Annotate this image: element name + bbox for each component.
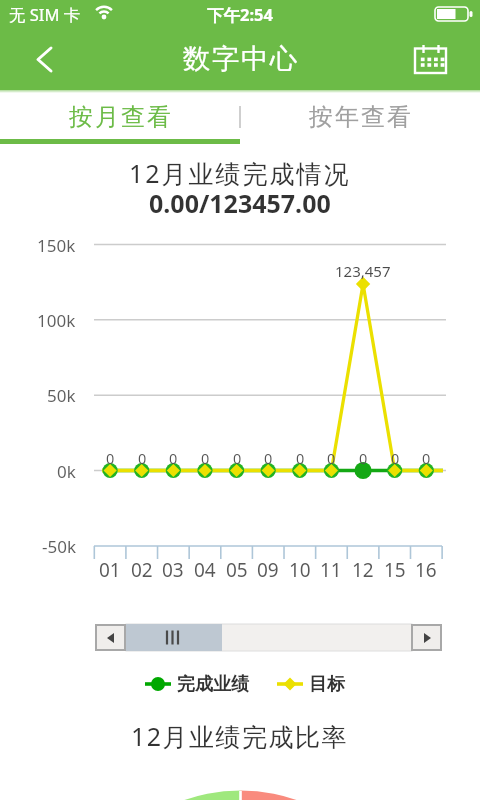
- staticText: 15: [384, 557, 406, 583]
- button[interactable]: 按年查看: [240, 90, 480, 144]
- staticText: 04: [194, 557, 216, 583]
- button[interactable]: [20, 35, 70, 83]
- staticText: 09: [257, 557, 279, 583]
- staticText: 11: [320, 557, 342, 583]
- staticText: -50k: [42, 535, 76, 558]
- staticText: 10: [289, 557, 311, 583]
- button[interactable]: [140, 670, 255, 698]
- staticText: 按月查看: [68, 102, 172, 132]
- staticText: 150k: [37, 234, 76, 257]
- staticText: 无 SIM 卡: [9, 3, 81, 26]
- staticText: 12月业绩完成情况: [129, 156, 351, 190]
- button[interactable]: [405, 38, 460, 82]
- staticText: 100k: [37, 309, 76, 332]
- staticText: 02: [131, 557, 153, 583]
- staticText: 03: [162, 557, 184, 583]
- staticText: 0: [391, 448, 400, 468]
- staticText: 16: [415, 557, 437, 583]
- staticText: 0: [296, 448, 305, 468]
- button[interactable]: 按月查看: [0, 90, 240, 144]
- staticText: 0: [327, 448, 336, 468]
- staticText: 50k: [47, 384, 76, 407]
- button[interactable]: [95, 624, 126, 651]
- staticText: 12月业绩完成比率: [131, 719, 349, 753]
- button[interactable]: [272, 670, 352, 698]
- staticText: 0k: [57, 460, 76, 483]
- staticText: 05: [226, 557, 248, 583]
- staticText: 0: [233, 448, 242, 468]
- staticText: 123,457: [335, 261, 391, 281]
- staticText: 0.00/123457.00: [149, 186, 331, 220]
- staticText: 12: [352, 557, 374, 583]
- staticText: 01: [99, 557, 121, 583]
- staticText: 目标: [309, 673, 345, 696]
- staticText: 下午2:54: [207, 3, 273, 26]
- staticText: 0: [359, 448, 368, 468]
- staticText: 按年查看: [308, 102, 412, 132]
- staticText: 0: [422, 448, 431, 468]
- staticText: 0: [106, 448, 115, 468]
- button[interactable]: [411, 624, 442, 651]
- staticText: 完成业绩: [177, 673, 249, 696]
- staticText: 数字中心: [182, 42, 298, 77]
- staticText: 0: [138, 448, 147, 468]
- staticText: 0: [169, 448, 178, 468]
- staticText: 0: [264, 448, 273, 468]
- staticText: 0: [201, 448, 210, 468]
